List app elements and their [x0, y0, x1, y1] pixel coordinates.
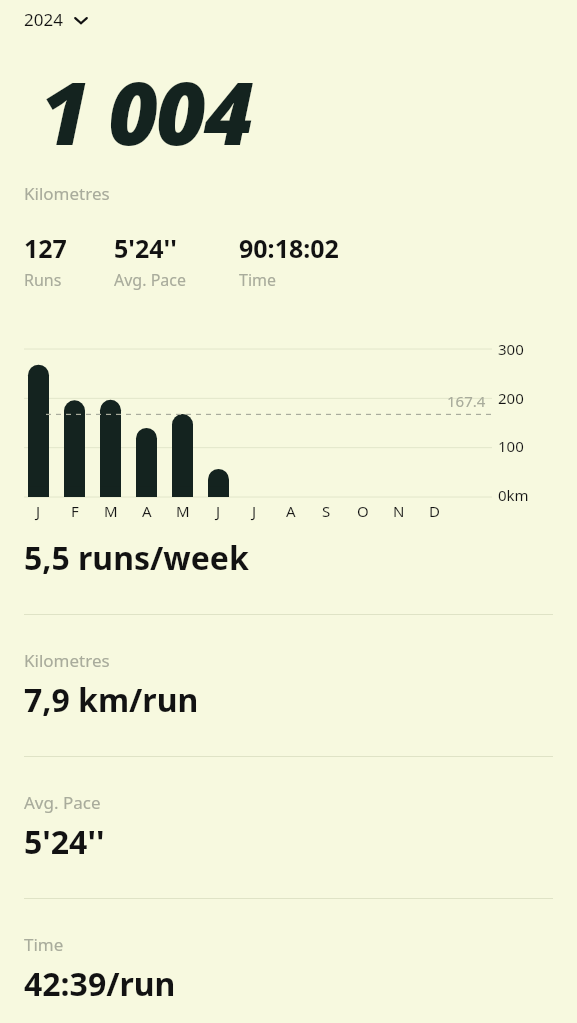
button[interactable]: 2024: [24, 8, 89, 31]
staticText: 1 004: [40, 53, 252, 170]
button[interactable]: Time: [0, 864, 577, 1006]
staticText: Kilometres: [24, 182, 110, 205]
button[interactable]: Kilometres: [0, 580, 577, 722]
button[interactable]: 90:18:02: [239, 231, 389, 291]
staticText: 300: [498, 339, 524, 359]
staticText: 100: [498, 436, 524, 456]
staticText: 0km: [498, 485, 529, 505]
staticText: 2024: [24, 8, 63, 31]
button[interactable]: Avg. Pace: [0, 722, 577, 864]
staticText: M: [104, 501, 118, 521]
staticText: 5'24'': [24, 820, 105, 864]
staticText: 90:18:02: [239, 231, 339, 265]
staticText: A: [142, 501, 152, 521]
staticText: 127: [24, 231, 67, 265]
other: Choose year: [73, 12, 89, 28]
staticText: 5,5 runs/week: [24, 536, 249, 580]
staticText: M: [176, 501, 190, 521]
staticText: 7,9 km/run: [24, 678, 199, 722]
staticText: J: [36, 501, 41, 521]
staticText: Time: [239, 269, 277, 291]
staticText: Kilometres: [24, 649, 110, 672]
staticText: O: [357, 501, 369, 521]
staticText: Runs: [24, 269, 62, 291]
staticText: S: [322, 501, 331, 521]
staticText: J: [252, 501, 257, 521]
staticText: Time: [24, 933, 64, 956]
staticText: J: [216, 501, 221, 521]
staticText: Avg. Pace: [24, 791, 101, 814]
staticText: 167.4: [447, 391, 486, 411]
staticText: D: [429, 501, 440, 521]
staticText: Avg. Pace: [114, 269, 187, 291]
staticText: 5'24'': [114, 231, 177, 265]
staticText: 200: [498, 388, 524, 408]
button[interactable]: 5'24'': [114, 231, 239, 291]
staticText: N: [393, 501, 405, 521]
staticText: A: [286, 501, 296, 521]
button[interactable]: 5,5 runs/week: [0, 536, 577, 580]
staticText: F: [71, 501, 79, 521]
staticText: 42:39/run: [24, 962, 176, 1006]
button[interactable]: 127: [24, 231, 114, 291]
